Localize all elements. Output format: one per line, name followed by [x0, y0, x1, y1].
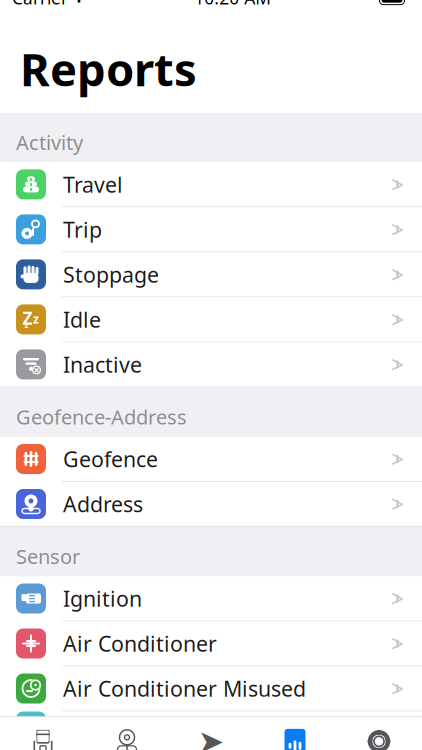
staticText: >: [391, 444, 404, 474]
button[interactable]: Reports: [253, 717, 337, 750]
staticText: >: [391, 628, 404, 659]
button[interactable]: Ignition: [0, 576, 422, 621]
button[interactable]: Settings: [337, 717, 421, 750]
button[interactable]: Places: [85, 717, 169, 750]
button[interactable]: Trip: [0, 207, 422, 252]
staticText: Geofence: [63, 445, 158, 473]
staticText: Air Conditioner Misused: [63, 674, 306, 703]
button[interactable]: Air Conditioner: [0, 621, 422, 666]
staticText: Sensor: [16, 543, 80, 570]
button[interactable]: Air Conditioner Misused: [0, 666, 422, 711]
staticText: >: [391, 583, 404, 614]
staticText: Activity: [16, 129, 83, 155]
staticText: Carrier: [12, 0, 68, 9]
staticText: Z: [22, 306, 32, 329]
staticText: Travel: [63, 170, 123, 199]
staticText: Air Conditioner: [63, 629, 217, 658]
button[interactable]: ×: [0, 342, 422, 387]
staticText: z: [24, 320, 28, 330]
button[interactable]: Z: [0, 297, 422, 342]
staticText: Reports: [20, 39, 197, 99]
staticText: Geofence-Address: [16, 403, 187, 430]
button[interactable]: Address: [0, 482, 422, 527]
button[interactable]: Geofence: [0, 437, 422, 482]
staticText: >: [391, 489, 404, 519]
staticText: >: [391, 259, 404, 289]
staticText: Ignition: [63, 584, 142, 613]
staticText: >: [391, 304, 404, 334]
staticText: 10:20 AM: [194, 0, 271, 9]
staticText: Address: [63, 490, 143, 518]
button[interactable]: Navigate: [169, 717, 253, 750]
staticText: z: [33, 311, 39, 327]
staticText: Idle: [63, 305, 101, 334]
staticText: Trip: [63, 215, 102, 244]
button[interactable]: Travel: [0, 162, 422, 207]
staticText: >: [391, 349, 404, 379]
button[interactable]: Stoppage: [0, 252, 422, 297]
staticText: >: [391, 673, 404, 704]
button[interactable]: More reports: [0, 711, 422, 716]
staticText: >: [391, 169, 404, 199]
staticText: ➤: [197, 723, 224, 750]
staticText: Inactive: [63, 350, 142, 379]
staticText: ×: [33, 363, 39, 377]
button[interactable]: Home: [1, 717, 85, 750]
staticText: >: [391, 214, 404, 244]
staticText: Stoppage: [63, 260, 159, 289]
